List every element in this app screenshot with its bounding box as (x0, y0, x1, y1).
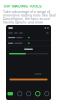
staticText: Take advantage of a range of innovative … (3, 10, 56, 24)
button[interactable]: Instrument row (6, 41, 51, 46)
button[interactable]: Chart (17, 91, 22, 96)
button[interactable]: Buy (7, 92, 13, 95)
button[interactable]: Open position (6, 79, 51, 80)
button[interactable]: Watchlist (8, 32, 13, 33)
button[interactable]: Watchlist (26, 91, 31, 96)
staticText: TOP TRADING TOOLS (3, 4, 41, 8)
button[interactable]: Trade (35, 91, 40, 96)
button[interactable]: More (45, 91, 49, 96)
button[interactable]: Positions (14, 32, 18, 33)
button[interactable]: Instrument row (6, 35, 51, 41)
button[interactable]: Orders (19, 32, 23, 33)
